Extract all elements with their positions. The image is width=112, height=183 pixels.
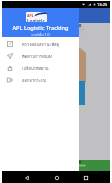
button[interactable]: เปลี่ยนรหัสผ่าน [2,62,79,74]
button[interactable]: ออกจากระบบ [2,74,79,86]
staticText: เวอร์ชั่น 1.0 [31,32,50,37]
button[interactable]: Recents [80,172,91,183]
staticText: APL Logistic Tracking [12,24,69,32]
staticText: ตรวจสอบสถานะพัสดุ [22,41,60,48]
button[interactable]: ติดตามการขนส่ง [2,50,79,62]
staticText: 13:25 [97,2,108,7]
button[interactable]: Back [21,172,32,183]
staticText: เปลี่ยนรหัสผ่าน [22,65,49,72]
staticText: Logistics [27,18,47,22]
staticText: ออกจากระบบ [22,77,47,84]
button[interactable]: ตรวจสอบสถานะพัสดุ [2,38,79,50]
staticText: APL [27,13,34,18]
button[interactable]: Home [51,172,62,183]
staticText: ติดตามการขนส่ง [22,53,53,60]
